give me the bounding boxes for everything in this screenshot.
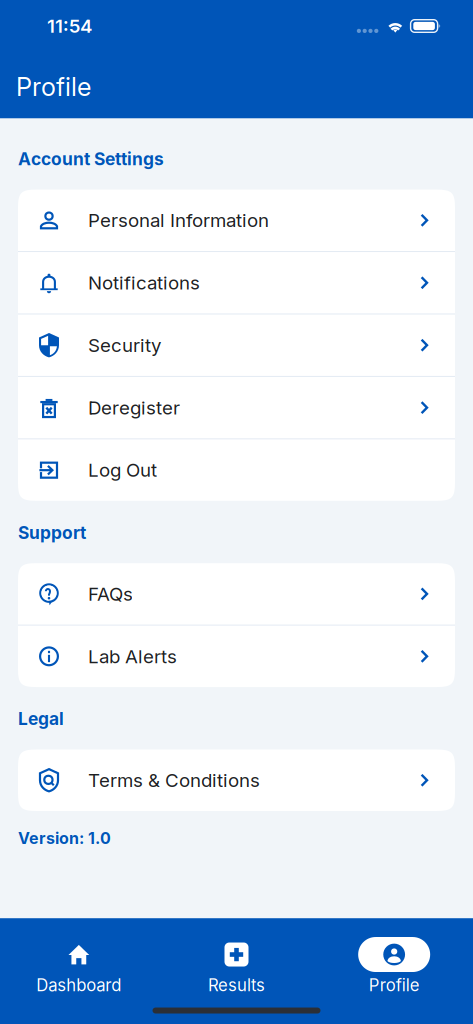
staticText: Support: [18, 524, 86, 541]
staticText: 11:54: [47, 17, 92, 35]
staticText: Version: 1.0: [18, 830, 111, 846]
staticText: Personal Information: [88, 211, 269, 229]
staticText: Profile: [16, 74, 91, 99]
staticText: Legal: [18, 710, 64, 727]
button[interactable]: Terms & Conditions: [18, 749, 455, 811]
button[interactable]: Profile: [315, 918, 473, 993]
button[interactable]: Log Out: [18, 439, 455, 501]
button[interactable]: Results: [158, 918, 315, 993]
staticText: Account Settings: [18, 150, 164, 167]
button[interactable]: Deregister: [18, 377, 455, 438]
staticText: FAQs: [88, 585, 133, 603]
staticText: Terms & Conditions: [88, 771, 260, 789]
button[interactable]: Dashboard: [0, 918, 158, 993]
button[interactable]: Lab Alerts: [18, 626, 455, 687]
staticText: Lab Alerts: [88, 647, 177, 665]
staticText: Security: [88, 336, 161, 354]
button[interactable]: Personal Information: [18, 190, 455, 251]
button[interactable]: Notifications: [18, 252, 455, 313]
staticText: Deregister: [88, 399, 180, 417]
staticText: Notifications: [88, 274, 200, 292]
button[interactable]: FAQs: [18, 563, 455, 625]
button[interactable]: Security: [18, 314, 455, 376]
staticText: Profile: [369, 977, 420, 993]
staticText: Results: [208, 977, 265, 993]
staticText: Dashboard: [36, 977, 121, 993]
staticText: Log Out: [88, 461, 157, 479]
